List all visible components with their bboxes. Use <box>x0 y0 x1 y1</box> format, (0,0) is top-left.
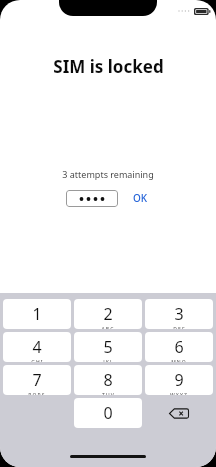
button[interactable]: 0 <box>74 398 142 428</box>
staticText: 3 attempts remaining <box>62 168 154 180</box>
button[interactable]: 9 <box>145 365 213 395</box>
staticText: 2 <box>103 303 113 325</box>
staticText: 1 <box>32 303 42 325</box>
staticText: 4 <box>32 336 42 358</box>
staticText: 5 <box>103 336 113 358</box>
button[interactable]: 3 <box>145 299 213 329</box>
staticText: 8 <box>103 369 113 391</box>
staticText: DEF <box>173 326 186 329</box>
button[interactable]: 6 <box>145 332 213 362</box>
button[interactable]: 1 <box>3 299 71 329</box>
staticText: TUV <box>102 392 115 395</box>
staticText: 7 <box>32 369 42 391</box>
button[interactable]: 5 <box>74 332 142 362</box>
staticText: GHI <box>31 359 44 362</box>
button[interactable]: Backspace <box>145 398 213 428</box>
staticText: OK <box>133 191 148 205</box>
staticText: 3 <box>174 303 184 325</box>
staticText: WXYZ <box>170 392 188 395</box>
staticText: SIM is locked <box>53 55 164 78</box>
staticText: PQRS <box>28 392 46 395</box>
staticText: 9 <box>174 369 184 391</box>
button[interactable]: 8 <box>74 365 142 395</box>
staticText: ABC <box>101 326 115 329</box>
staticText: 6 <box>174 336 184 358</box>
staticText: MNO <box>171 359 187 362</box>
button[interactable]: PIN entry <box>66 190 118 207</box>
button[interactable]: OK <box>131 189 150 207</box>
staticText: JKL <box>103 359 114 362</box>
button[interactable]: 2 <box>74 299 142 329</box>
button[interactable]: 4 <box>3 332 71 362</box>
staticText: 0 <box>103 402 113 424</box>
button[interactable]: 7 <box>3 365 71 395</box>
